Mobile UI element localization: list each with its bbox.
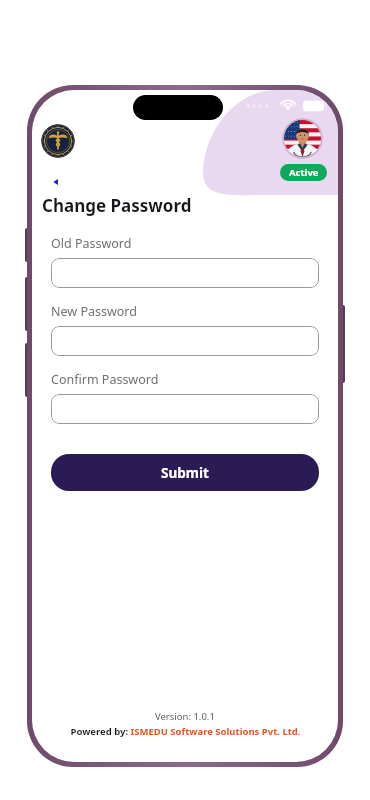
staticText: Old Password [51, 235, 132, 252]
button[interactable]: Profile [282, 118, 323, 159]
button[interactable]: Active [280, 164, 327, 181]
staticText: Powered by: ISMEDU Software Solutions Pv… [70, 725, 301, 738]
button[interactable]: Confirm Password [51, 394, 319, 424]
button[interactable]: New Password [51, 326, 319, 356]
staticText: Submit [161, 464, 209, 482]
staticText: New Password [51, 303, 137, 320]
staticText: Version: 1.0.1 [155, 710, 215, 723]
button[interactable]: Back [46, 172, 66, 192]
staticText: Active [289, 166, 319, 179]
staticText: Change Password [42, 194, 192, 217]
button[interactable]: App logo [41, 124, 75, 158]
button[interactable]: Old Password [51, 258, 319, 288]
staticText: Confirm Password [51, 371, 159, 388]
button[interactable]: Submit [51, 454, 319, 491]
